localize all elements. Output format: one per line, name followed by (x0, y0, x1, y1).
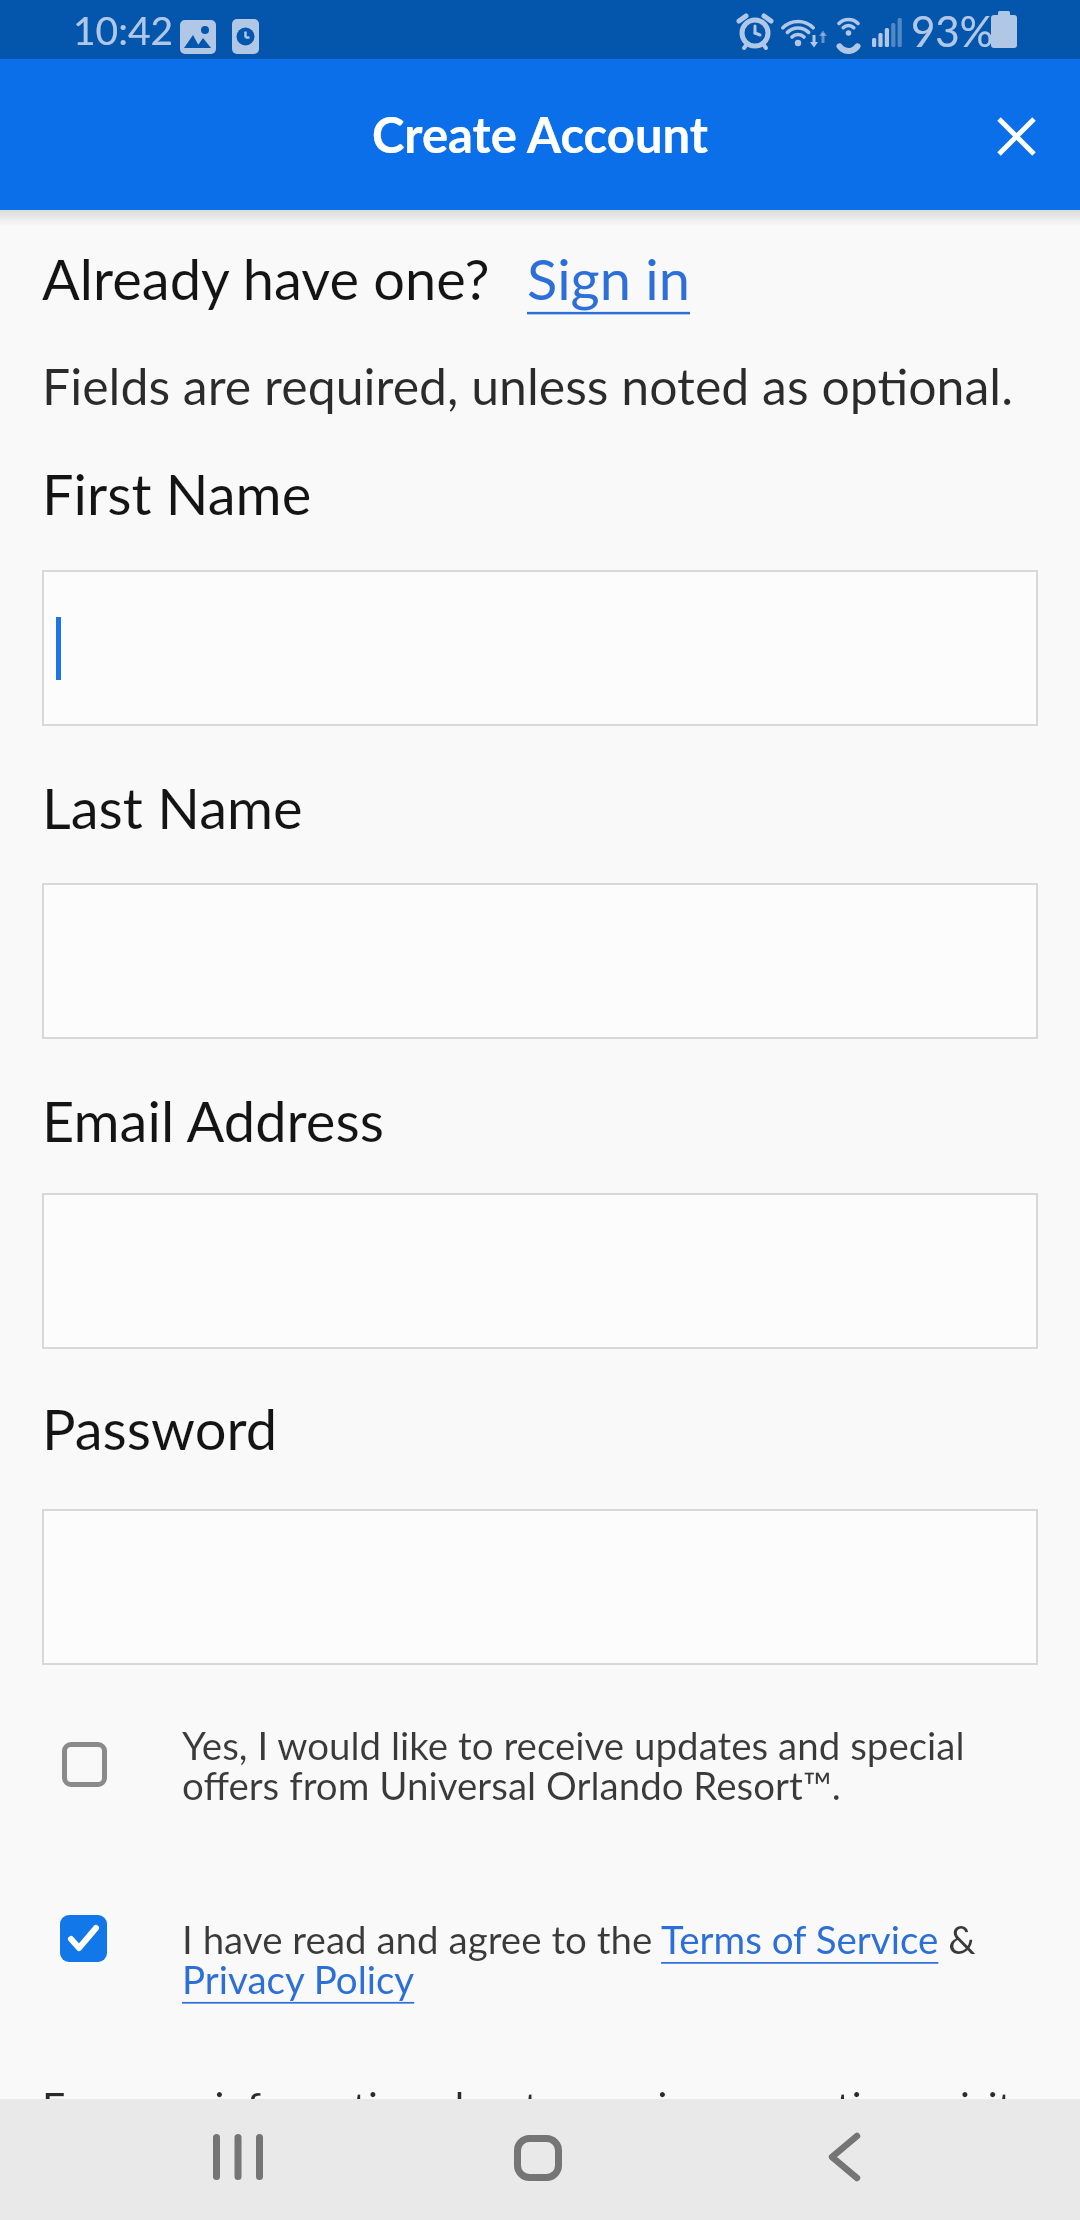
button[interactable] (42, 1193, 1038, 1349)
staticText: Yes, I would like to receive updates and… (182, 1722, 965, 1808)
staticText: Last Name (42, 774, 303, 841)
button[interactable] (185, 2109, 290, 2209)
staticText: Fields are required, unless noted as opt… (42, 356, 1013, 416)
staticText: Already have one? (42, 245, 490, 312)
button[interactable] (42, 1509, 1038, 1665)
button[interactable] (42, 883, 1038, 1039)
staticText: For more information about our privacy p… (42, 2082, 1013, 2131)
button[interactable] (60, 1915, 107, 1962)
staticText: 10:42 (73, 7, 174, 54)
staticText: 93% (911, 6, 994, 56)
staticText: Password (42, 1395, 278, 1462)
staticText: First Name (42, 460, 312, 527)
staticText: Create Account (372, 105, 709, 164)
staticText: Email Address (42, 1087, 384, 1154)
button[interactable] (62, 1742, 107, 1787)
button[interactable]: I have read and agree to the Terms of Se… (182, 1916, 976, 2002)
button[interactable] (980, 100, 1052, 172)
button[interactable]: Sign in (527, 245, 690, 312)
button[interactable] (800, 2109, 905, 2209)
button[interactable] (488, 2109, 593, 2209)
button[interactable] (42, 570, 1038, 726)
